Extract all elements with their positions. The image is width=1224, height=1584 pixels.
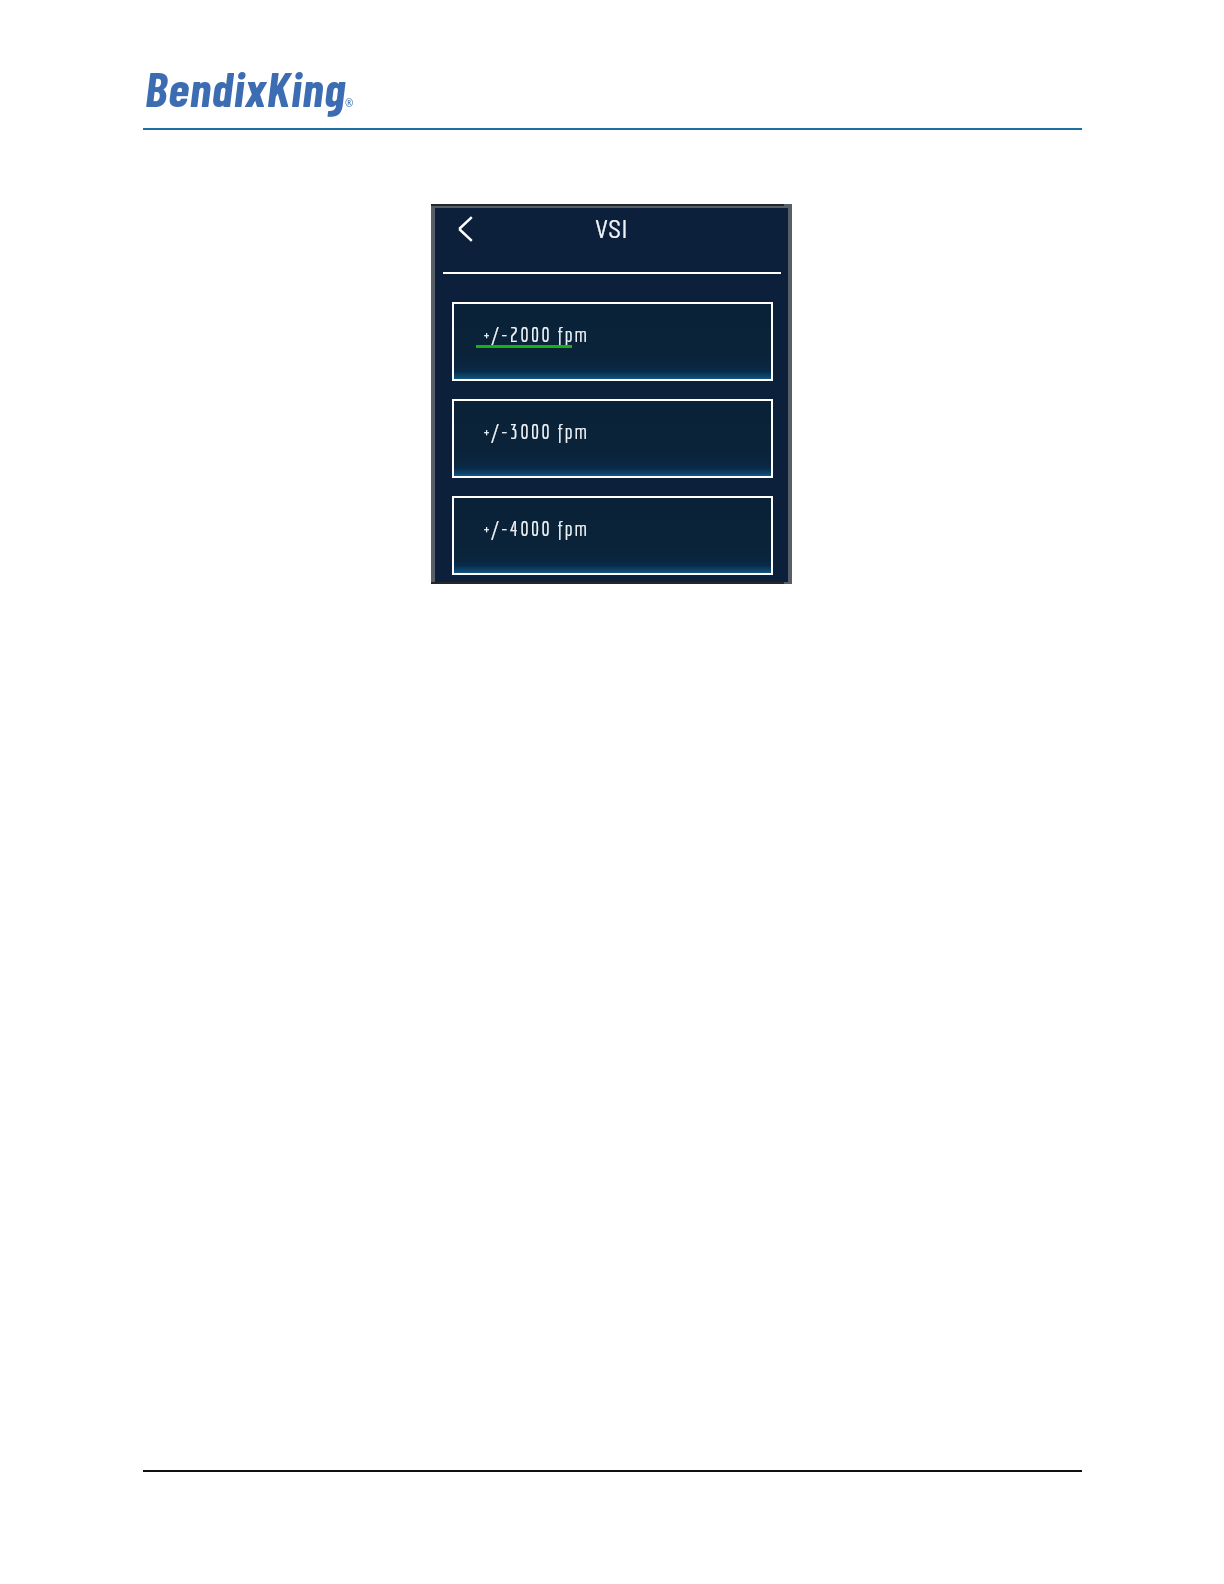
button[interactable]: +/-2000 fpm — [454, 304, 771, 379]
button[interactable]: +/-3000 fpm — [454, 401, 771, 476]
staticText: +/-3000 fpm — [484, 419, 590, 443]
staticText: VSI — [595, 213, 628, 243]
button[interactable]: +/-4000 fpm — [454, 498, 771, 573]
staticText: +/-2000 fpm — [484, 322, 590, 346]
staticText: ® — [345, 96, 354, 110]
staticText: +/-4000 fpm — [484, 516, 590, 540]
button[interactable]: Back — [458, 216, 473, 242]
staticText: BendixKing — [145, 58, 347, 116]
